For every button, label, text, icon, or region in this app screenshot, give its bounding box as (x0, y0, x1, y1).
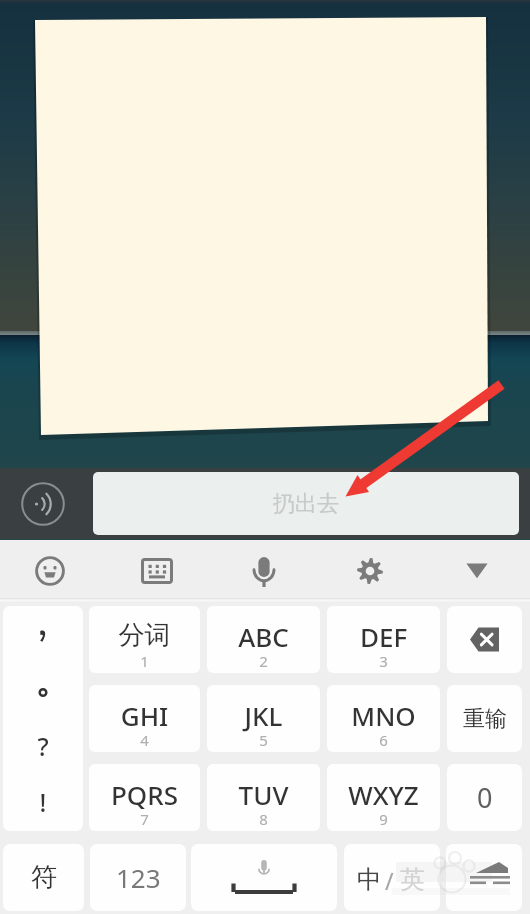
staticText: 符 (31, 861, 57, 894)
staticText: ! (3, 785, 83, 819)
button[interactable]: 123 (90, 844, 186, 911)
button[interactable]: 0 (447, 764, 522, 831)
button[interactable]: DEF (327, 606, 440, 673)
button[interactable]: Settings (344, 545, 396, 597)
button[interactable]: 中 (344, 844, 440, 911)
staticText: 3 (327, 651, 440, 673)
button[interactable]: MNO (327, 685, 440, 752)
button[interactable]: GHI (89, 685, 200, 752)
staticText: 5 (207, 730, 320, 752)
button[interactable]: Punctuation (3, 606, 83, 831)
button[interactable]: Voice (238, 545, 290, 597)
staticText: 8 (207, 809, 320, 831)
staticText: 扔出去 (273, 490, 339, 518)
button[interactable]: TUV (207, 764, 320, 831)
button[interactable]: Space (191, 844, 337, 911)
button[interactable]: Emoji (24, 545, 76, 597)
button[interactable]: PQRS (89, 764, 200, 831)
staticText: 0 (477, 779, 493, 816)
staticText: 123 (116, 860, 161, 895)
staticText: ABC (207, 619, 320, 673)
staticText: 2 (207, 651, 320, 673)
button[interactable]: 重输 (447, 685, 522, 752)
button[interactable]: 扔出去 (93, 472, 519, 535)
staticText: PQRS (89, 777, 200, 831)
button[interactable]: Voice input (21, 482, 65, 526)
button[interactable]: 分词 (89, 606, 200, 673)
staticText: 英 (400, 864, 425, 895)
staticText: 9 (327, 809, 440, 831)
staticText: 中 (357, 864, 382, 895)
button[interactable]: 符 (3, 844, 84, 911)
staticText: 4 (89, 730, 200, 752)
staticText: MNO (327, 698, 440, 752)
staticText: / (385, 865, 394, 896)
button[interactable]: Hide keyboard (451, 545, 503, 597)
button[interactable]: Backspace (447, 606, 522, 673)
button[interactable]: Keyboard layout (131, 545, 183, 597)
button[interactable]: Enter (446, 844, 522, 911)
staticText: 重输 (463, 705, 507, 733)
staticText: GHI (89, 698, 200, 752)
staticText: TUV (207, 777, 320, 831)
staticText: 6 (327, 730, 440, 752)
button[interactable]: WXYZ (327, 764, 440, 831)
staticText: 1 (89, 651, 200, 673)
staticText: 分词 (89, 619, 200, 673)
staticText: DEF (327, 619, 440, 673)
staticText: 7 (89, 809, 200, 831)
staticText: JKL (207, 698, 320, 752)
staticText: ? (3, 729, 83, 763)
staticText: WXYZ (327, 777, 440, 831)
button[interactable]: JKL (207, 685, 320, 752)
button[interactable]: ABC (207, 606, 320, 673)
